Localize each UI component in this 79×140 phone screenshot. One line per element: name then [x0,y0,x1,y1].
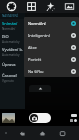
button[interactable]: Show modes [29,85,51,92]
button[interactable]: Shutter [29,113,51,123]
button[interactable]: Camera settings [0,0,22,13]
button[interactable]: Panorama [60,0,79,13]
staticText: NASTAVENÍ [2,14,18,18]
button[interactable]: Back [12,126,32,140]
staticText: Normální [28,21,71,26]
button[interactable]: Menu [0,126,12,140]
button[interactable]: Normální [24,17,79,29]
button[interactable]: ISO [0,32,25,45]
staticText: Automaticky [2,53,20,57]
button[interactable]: Snímání [0,19,25,32]
button[interactable]: Recents [52,126,72,140]
staticText: Normální [2,27,16,31]
staticText: Akce [28,45,71,50]
staticText: Časovač [2,73,18,78]
staticText: Vypnuto [2,79,14,83]
button[interactable]: Časovač [0,71,25,84]
button[interactable]: More modes [74,119,77,122]
button[interactable]: Home [32,126,52,140]
button[interactable]: Úprava efe. [0,58,25,71]
staticText: Portrét [28,57,71,62]
button[interactable]: Vyvážení b. [0,45,25,58]
button[interactable]: Grid [22,0,41,13]
staticText: Snímání [2,21,18,26]
button[interactable]: Video mode [71,114,77,117]
staticText: Úprava efe. [2,62,23,67]
button[interactable]: Na šířku [24,65,79,77]
staticText: Vyvážení b. [2,47,23,52]
button[interactable]: Inteligentní [24,29,79,41]
button[interactable]: Portrét [24,53,79,65]
button[interactable]: Gallery [2,113,15,123]
staticText: ISO [2,34,9,39]
button[interactable]: Akce [24,41,79,53]
staticText: Automaticky [2,40,20,44]
button[interactable]: Effects [41,0,60,13]
staticText: Inteligentní [28,33,71,38]
button[interactable]: Photo mode [70,119,73,122]
staticText: Na šířku [28,69,71,74]
